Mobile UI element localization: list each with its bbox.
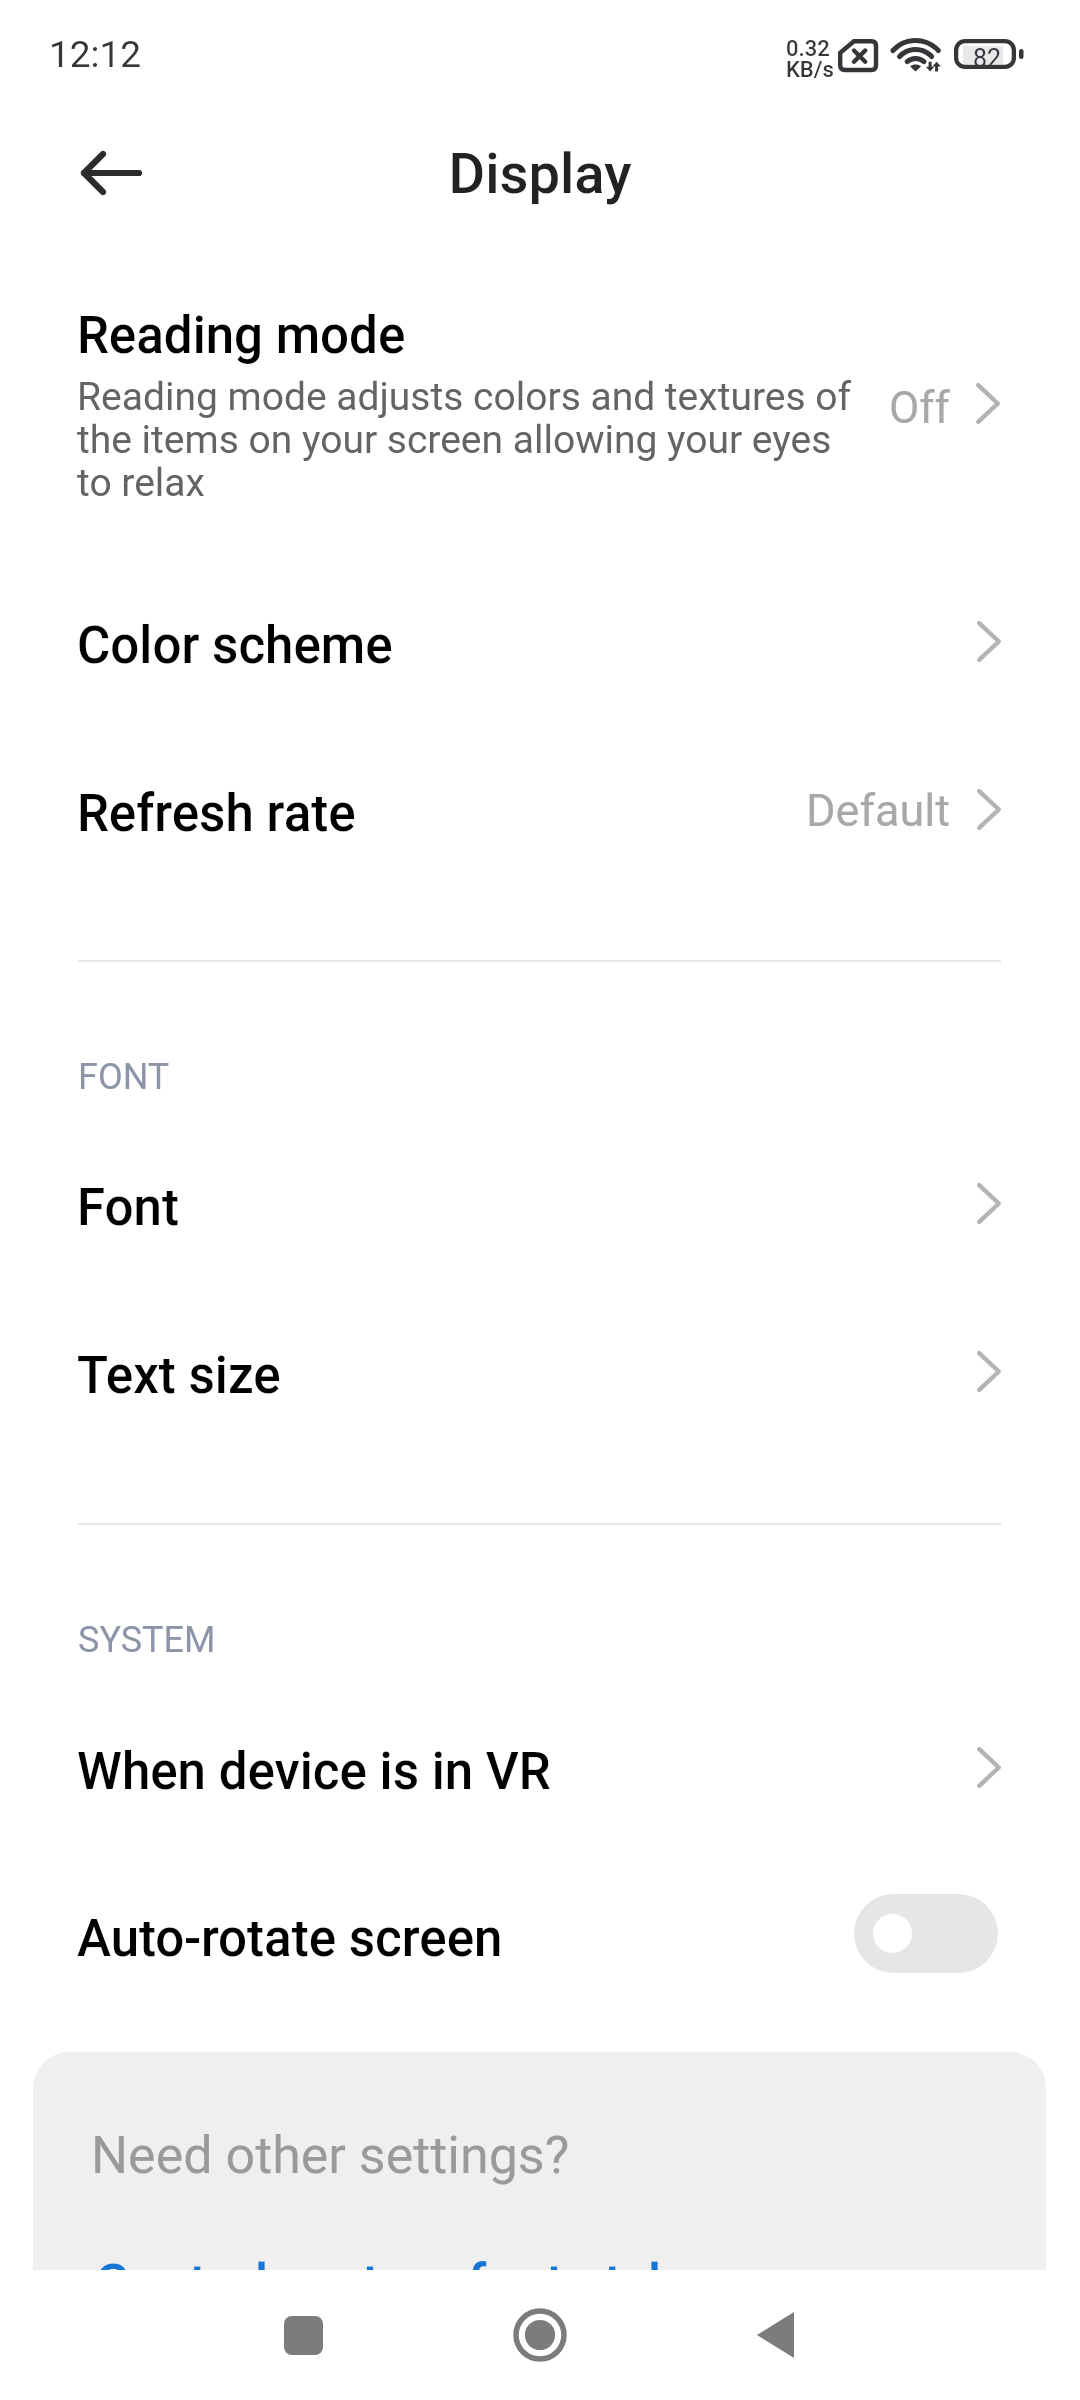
button[interactable]: Color scheme <box>0 562 1080 730</box>
button[interactable]: Home <box>480 2275 600 2395</box>
staticText: Auto-rotate screen <box>77 1909 503 1969</box>
staticText: 82 <box>973 44 1002 73</box>
staticText: Font <box>77 1178 179 1238</box>
staticText: FONT <box>78 1056 170 1098</box>
staticText: When device is in VR <box>77 1742 551 1802</box>
staticText: Off <box>889 382 950 434</box>
button[interactable]: Refresh rate <box>0 730 1080 898</box>
button[interactable]: Text size <box>0 1292 1080 1460</box>
staticText: Refresh rate <box>77 784 356 844</box>
button[interactable]: Reading mode <box>0 284 1080 530</box>
button[interactable]: Auto-rotate screen <box>0 1855 1080 2023</box>
staticText: Color scheme <box>77 616 393 676</box>
staticText: Reading mode <box>77 306 406 366</box>
staticText: Reading mode adjusts colors and textures… <box>77 374 872 506</box>
staticText: Control system font style <box>95 2253 690 2270</box>
staticText: Display <box>0 141 1080 207</box>
button[interactable]: Auto-rotate screen toggle, off <box>854 1894 998 1973</box>
button[interactable]: When device is in VR <box>0 1688 1080 1856</box>
button[interactable]: Back <box>715 2275 835 2395</box>
button[interactable]: Need other settings? <box>33 2052 1046 2270</box>
button[interactable]: Back <box>56 118 166 228</box>
staticText: Text size <box>77 1346 281 1406</box>
staticText: Need other settings? <box>91 2125 570 2186</box>
button[interactable]: Recents <box>243 2275 363 2395</box>
staticText: 0.32 <box>786 36 830 62</box>
staticText: SYSTEM <box>78 1619 216 1661</box>
button[interactable]: Font <box>0 1124 1080 1292</box>
staticText: Default <box>806 784 950 837</box>
staticText: 12:12 <box>49 33 142 76</box>
staticText: KB/s <box>786 57 834 83</box>
